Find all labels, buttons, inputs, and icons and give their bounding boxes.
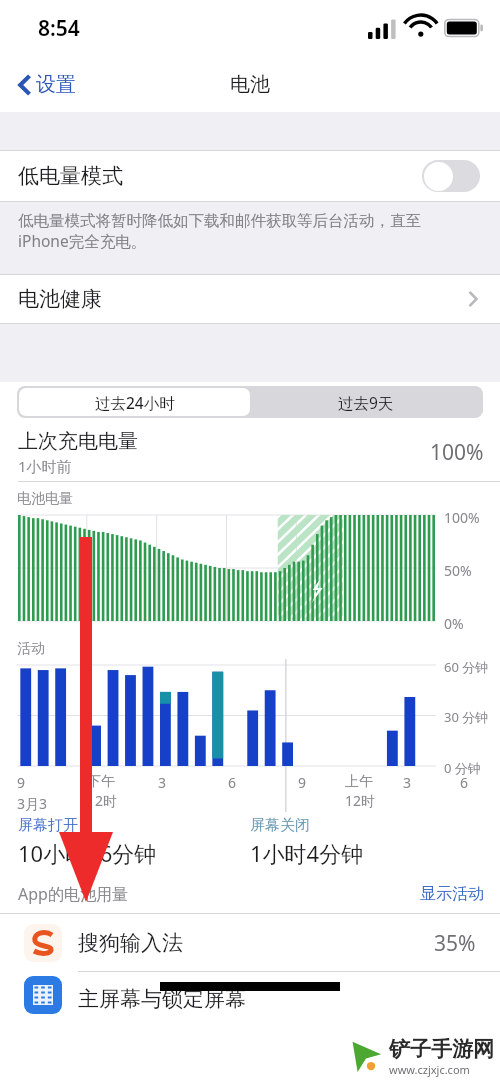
button[interactable]: 屏幕关闭 <box>250 816 364 868</box>
staticText: 屏幕打开 <box>18 816 78 835</box>
staticText: 上次充电电量 <box>18 429 138 454</box>
button[interactable]: 主屏幕与锁定屏幕 <box>0 972 500 1022</box>
staticText: 屏幕关闭 <box>250 816 310 835</box>
staticText: 8:54 <box>38 14 80 43</box>
button[interactable]: 低电量模式 <box>0 150 500 202</box>
staticText: 3 <box>403 773 412 792</box>
staticText: 35% <box>434 929 476 958</box>
staticText: 0 分钟 <box>444 759 481 777</box>
staticText: 1小时4分钟 <box>250 838 364 868</box>
staticText: 3 <box>158 773 167 792</box>
staticText: 主屏幕与锁定屏幕 <box>78 986 246 1012</box>
button[interactable]: 屏幕打开 <box>18 816 157 868</box>
button[interactable]: 过去9天 <box>250 388 481 416</box>
staticText: 上午 12时 4月1日 <box>345 773 390 830</box>
staticText: 10小时56分钟 <box>18 838 157 868</box>
staticText: App的电池用量 <box>18 883 128 905</box>
staticText: 过去9天 <box>338 392 394 413</box>
staticText: 低电量模式 <box>18 163 123 189</box>
staticText: 60 分钟 <box>444 658 489 676</box>
staticText: 电池健康 <box>18 286 102 312</box>
button[interactable]: 搜狗输入法 <box>0 914 500 972</box>
staticText: 0% <box>444 614 464 633</box>
staticText: 电池电量 <box>17 490 73 508</box>
staticText: 6 <box>228 773 237 792</box>
staticText: 活动 <box>17 640 45 658</box>
button[interactable]: 显示活动 <box>420 884 484 904</box>
staticText: 下午 12时 <box>87 773 118 810</box>
staticText: 100% <box>444 508 480 527</box>
staticText: 100% <box>430 438 484 467</box>
staticText: 6 <box>460 773 469 792</box>
staticText: 电池 <box>230 72 270 97</box>
staticText: 过去24小时 <box>95 392 175 413</box>
staticText: 9 <box>17 773 26 792</box>
staticText: 搜狗输入法 <box>78 930 183 956</box>
staticText: 1小时前 <box>18 456 72 476</box>
staticText: 30 分钟 <box>444 708 489 726</box>
staticText: 铲子手游网 <box>389 1036 494 1062</box>
staticText: 9 <box>298 773 307 792</box>
button[interactable]: 设置 <box>12 68 82 101</box>
staticText: 显示活动 <box>420 884 484 904</box>
button[interactable]: 电池健康 <box>0 274 500 324</box>
staticText: www.czjxjc.com <box>389 1062 470 1077</box>
staticText: 50% <box>444 561 472 580</box>
staticText: 设置 <box>36 72 76 97</box>
button[interactable]: 低电量模式开关 <box>422 160 480 192</box>
staticText: 低电量模式将暂时降低如下载和邮件获取等后台活动，直至 iPhone完全充电。 <box>18 211 421 252</box>
staticText: 3月3 <box>17 794 48 813</box>
button[interactable]: 过去24小时 <box>19 388 250 416</box>
